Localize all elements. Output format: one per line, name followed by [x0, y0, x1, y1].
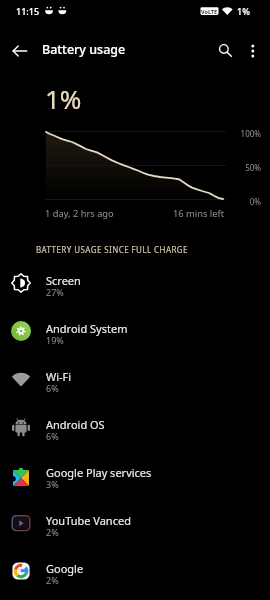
- staticText: 19%: [46, 334, 64, 346]
- staticText: Wi-Fi: [46, 369, 72, 384]
- button[interactable]: Back: [6, 37, 34, 65]
- staticText: Battery usage: [42, 41, 126, 58]
- staticText: 2%: [46, 526, 59, 538]
- staticText: 50%: [227, 162, 261, 173]
- staticText: 2%: [46, 574, 59, 586]
- staticText: 1%: [45, 81, 82, 116]
- staticText: Android OS: [46, 417, 105, 432]
- staticText: 3%: [46, 478, 59, 490]
- staticText: 6%: [46, 382, 59, 394]
- button[interactable]: Wi-Fi: [0, 355, 270, 403]
- staticText: Google: [46, 561, 84, 576]
- button[interactable]: More options: [239, 37, 267, 65]
- button[interactable]: Android OS: [0, 403, 270, 451]
- staticText: Android System: [46, 321, 128, 336]
- staticText: 6%: [46, 430, 59, 442]
- staticText: YouTube Vanced: [46, 513, 131, 528]
- button[interactable]: Google: [0, 547, 270, 595]
- staticText: 16 mins left: [148, 207, 224, 220]
- button[interactable]: Search: [210, 37, 238, 65]
- staticText: 27%: [46, 286, 64, 298]
- staticText: 100%: [227, 128, 261, 139]
- staticText: 1 day, 2 hrs ago: [45, 207, 114, 220]
- button[interactable]: Screen: [0, 259, 270, 307]
- staticText: 1%: [237, 5, 250, 17]
- staticText: Screen: [46, 273, 81, 288]
- staticText: 0%: [227, 196, 261, 207]
- button[interactable]: YouTube Vanced: [0, 499, 270, 547]
- staticText: Google Play services: [46, 465, 152, 480]
- button[interactable]: Google Play services: [0, 451, 270, 499]
- button[interactable]: Android System: [0, 307, 270, 355]
- staticText: BATTERY USAGE SINCE FULL CHARGE: [36, 244, 188, 255]
- staticText: VoLTE: [201, 8, 218, 15]
- staticText: 11:15: [16, 5, 40, 17]
